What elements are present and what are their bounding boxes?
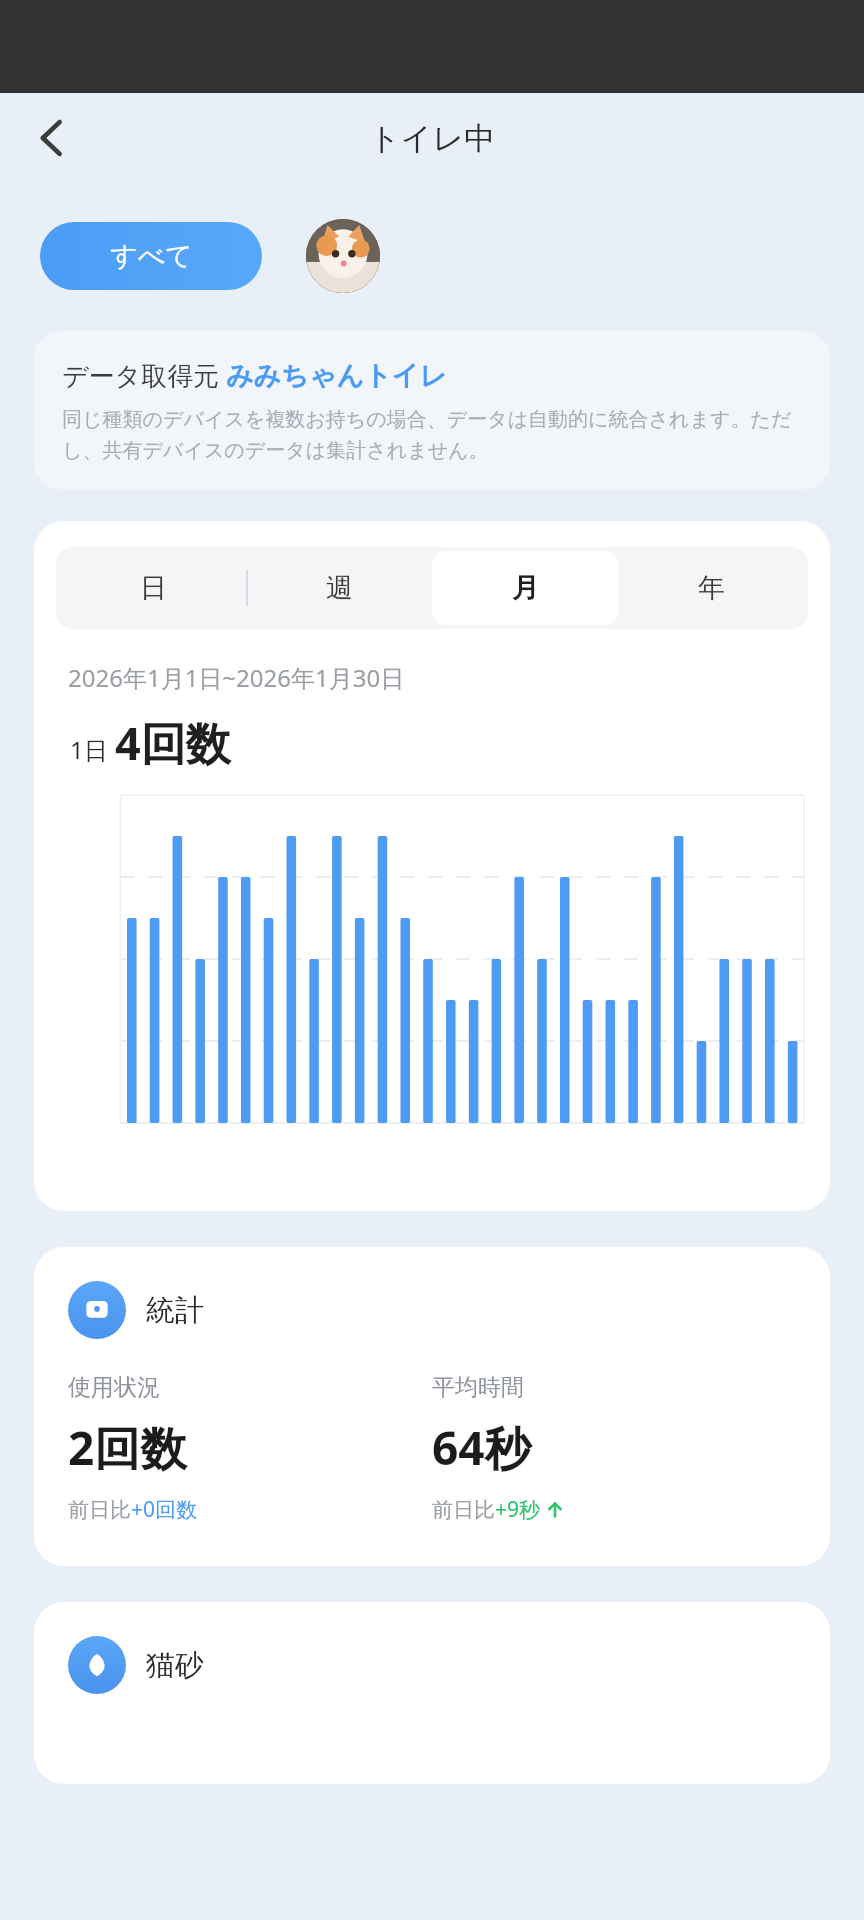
staticText: データ取得元 みみちゃんトイレ [62,357,448,393]
staticText: 日 [140,571,167,605]
staticText: 4回数 [115,712,231,773]
button[interactable]: 年 [618,551,804,625]
staticText: 2026年1月1日~2026年1月30日 [68,661,405,694]
button[interactable]: Litter [68,1636,126,1694]
button[interactable]: すべて [40,222,262,290]
staticText: 2回数 [68,1416,187,1479]
staticText: 同じ種類のデバイスを複数お持ちの場合、データは自動的に統合されます。ただし、共有… [62,407,802,463]
staticText: 64秒 [432,1416,531,1479]
button[interactable]: 日 [60,551,246,625]
button[interactable]: データ取得元 みみちゃんトイレ [34,331,830,489]
staticText: 1日 [70,733,108,766]
button[interactable]: 月 [432,551,618,625]
staticText: 前日比+9秒 [432,1495,541,1524]
staticText: すべて [110,239,193,273]
button[interactable]: Statistics [68,1281,126,1339]
staticText: 年 [698,571,725,605]
staticText: 週 [326,571,353,605]
staticText: 猫砂 [146,1647,204,1684]
button[interactable]: 週 [246,551,432,625]
button[interactable]: Back [20,106,84,170]
staticText: 使用状況 [68,1373,160,1402]
staticText: 統計 [146,1292,204,1329]
staticText: 月 [512,571,539,605]
staticText: 平均時間 [432,1373,524,1402]
staticText: トイレ中 [369,119,496,158]
button[interactable]: Cat profile [306,219,380,293]
staticText: 前日比+0回数 [68,1495,198,1524]
